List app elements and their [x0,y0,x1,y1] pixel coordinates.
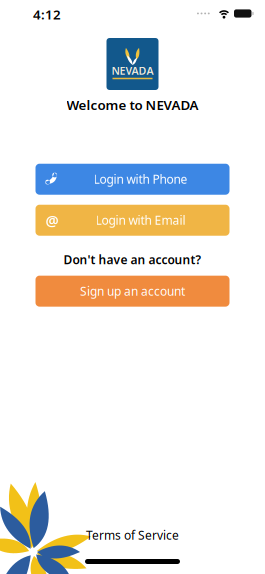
button[interactable]: Sign up an account [35,276,229,307]
staticText: Don't have an account? [63,252,201,268]
staticText: NEVADA [111,63,153,78]
staticText: Login with Email [95,212,185,228]
staticText: Welcome to NEVADA [66,96,198,114]
staticText: @ [45,210,58,230]
button[interactable]: Terms of Service [86,527,179,543]
staticText: 4:12 [33,5,61,23]
button[interactable]: Login with Email [35,205,229,236]
button[interactable]: Login with Phone [35,164,229,195]
staticText: Sign up an account [80,283,185,299]
staticText: Login with Phone [93,171,187,187]
staticText: Terms of Service [86,527,179,543]
